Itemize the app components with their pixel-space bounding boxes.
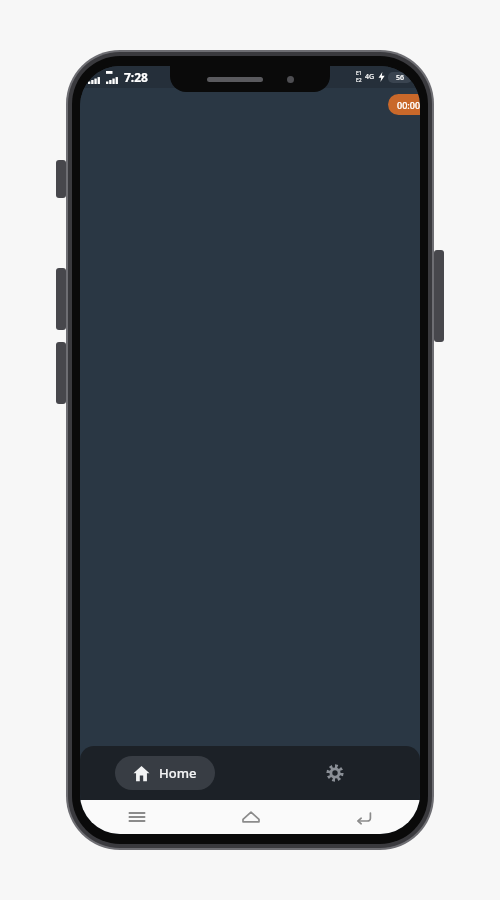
staticText: E1 (356, 70, 362, 77)
staticText: E2 (356, 77, 362, 84)
staticText: Home (159, 764, 197, 782)
staticText: 7:28 (124, 69, 148, 85)
staticText: 00:00 (397, 99, 420, 111)
staticText: 56 (396, 73, 405, 83)
button[interactable]: Home (194, 800, 307, 834)
staticText: 4G (365, 72, 375, 82)
button[interactable]: Settings (304, 756, 366, 790)
button[interactable]: Home (115, 756, 215, 790)
button[interactable]: Back (307, 800, 420, 834)
button[interactable]: Recent apps (80, 800, 194, 834)
